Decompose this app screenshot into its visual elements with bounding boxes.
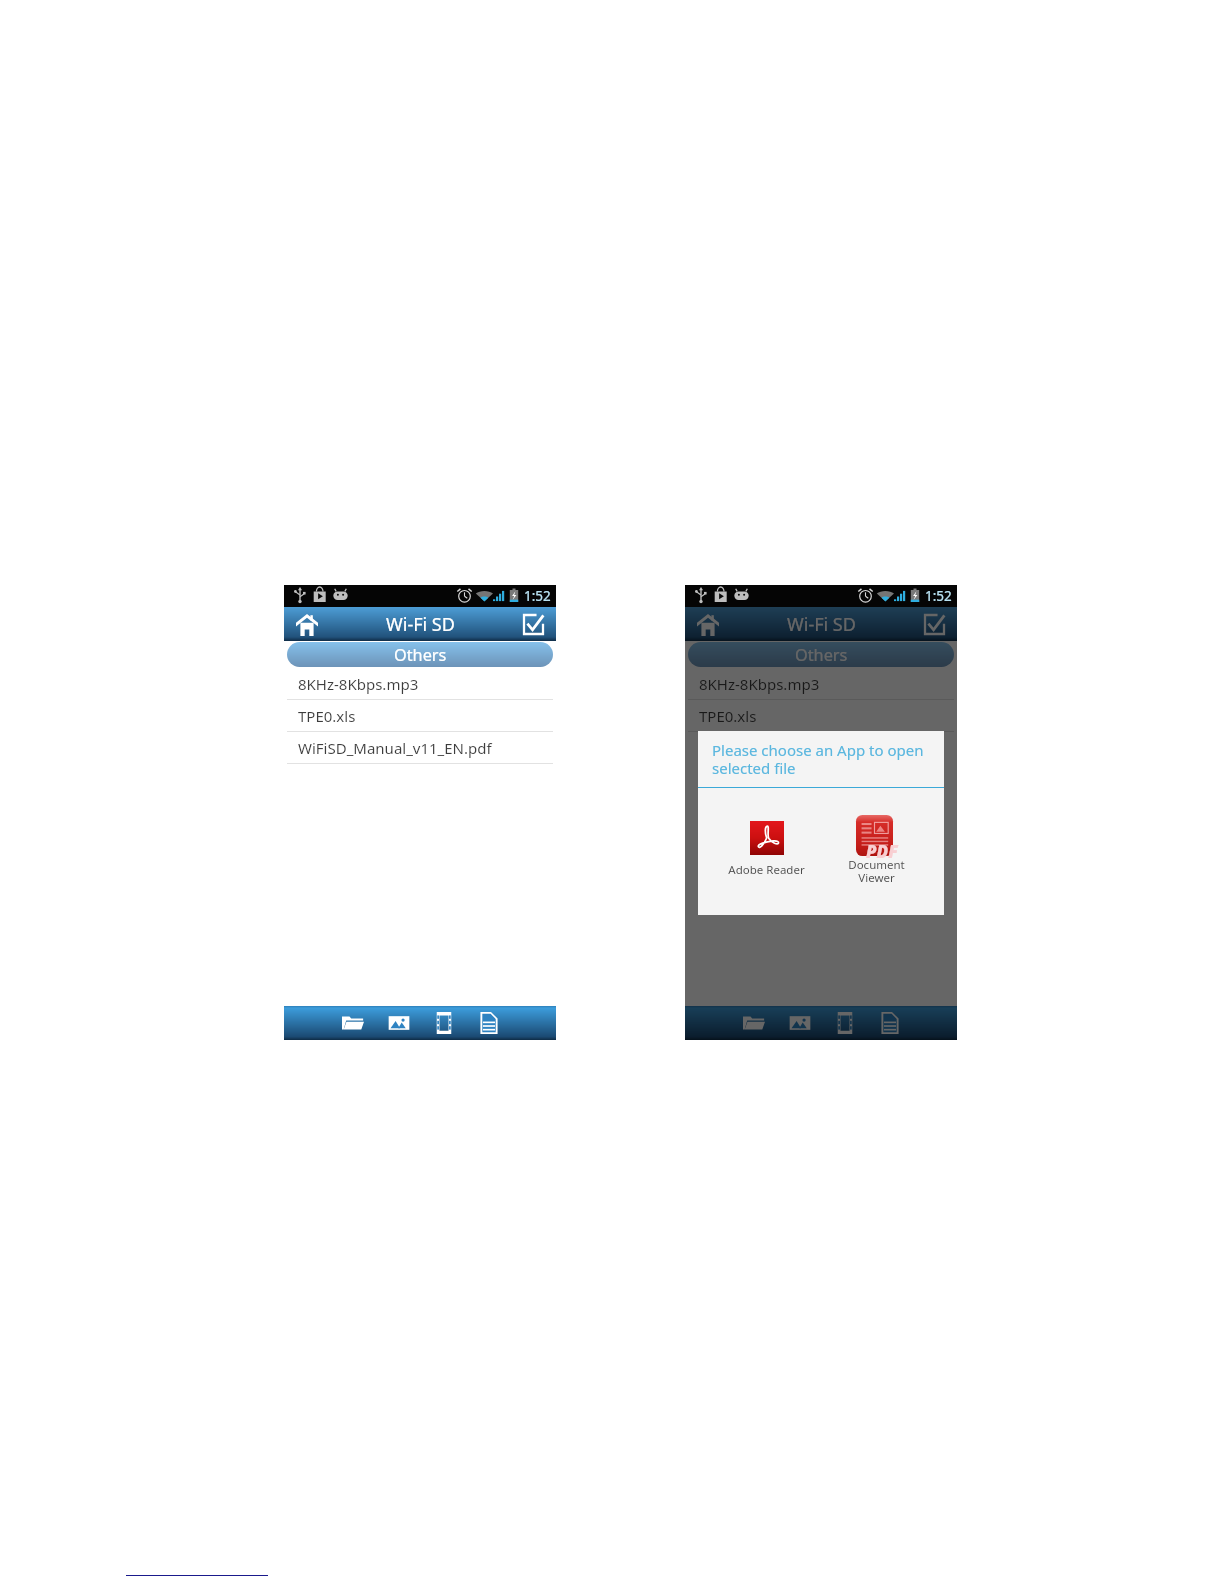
button[interactable]: TPE0.xls — [284, 700, 556, 732]
staticText: Adobe Reader — [728, 862, 805, 878]
staticText: PDF — [866, 840, 898, 863]
staticText: 1:52 — [925, 587, 952, 605]
button[interactable]: Files — [731, 1006, 776, 1040]
button[interactable]: Adobe Reader — [713, 813, 820, 888]
button[interactable]: Videos — [421, 1006, 466, 1040]
button[interactable]: Photos — [376, 1006, 421, 1040]
button[interactable]: Files — [330, 1006, 375, 1040]
staticText: Please choose an App to open selected fi… — [712, 740, 924, 779]
button[interactable]: Others — [287, 642, 553, 667]
button[interactable]: Home — [296, 614, 318, 636]
button[interactable]: Select all — [524, 615, 543, 634]
staticText: Others — [795, 644, 848, 666]
button[interactable]: Documents — [466, 1006, 511, 1040]
button[interactable]: Select all — [925, 615, 944, 634]
button[interactable]: Photos — [777, 1006, 822, 1040]
button[interactable]: 8KHz-8Kbps.mp3 — [685, 668, 957, 700]
staticText: TPE0.xls — [699, 706, 757, 726]
button[interactable]: PDF — [823, 809, 930, 895]
staticText: TPE0.xls — [298, 706, 356, 726]
staticText: 1:52 — [524, 587, 551, 605]
button[interactable]: 8KHz-8Kbps.mp3 — [284, 668, 556, 700]
staticText: WiFiSD_Manual_v11_EN.pdf — [298, 738, 492, 758]
staticText: Others — [394, 644, 447, 666]
staticText: Wi-Fi SD — [787, 612, 856, 637]
button[interactable]: Others — [688, 642, 954, 667]
staticText: 8KHz-8Kbps.mp3 — [699, 674, 820, 694]
button[interactable]: Home — [697, 614, 719, 636]
button[interactable]: Videos — [822, 1006, 867, 1040]
staticText: Document Viewer — [823, 857, 930, 886]
button[interactable]: WiFiSD_Manual_v11_EN.pdf — [284, 732, 556, 764]
button[interactable]: Documents — [867, 1006, 912, 1040]
staticText: 8KHz-8Kbps.mp3 — [298, 674, 419, 694]
staticText: Wi-Fi SD — [386, 612, 455, 637]
button[interactable]: TPE0.xls — [685, 700, 957, 732]
